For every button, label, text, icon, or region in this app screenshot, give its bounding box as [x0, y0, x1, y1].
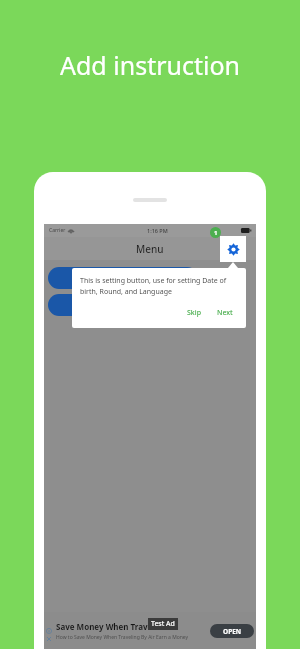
staticText: Test Ad	[151, 619, 175, 629]
staticText: How to Save Money When Traveling By Air …	[56, 634, 189, 641]
staticText: 1:16 PM	[147, 227, 168, 234]
staticText: Save Money When Travel	[56, 621, 155, 632]
staticText: This is setting button, use for setting …	[80, 276, 238, 296]
staticText: Skip	[187, 308, 201, 318]
button[interactable]: Settings	[220, 236, 246, 262]
staticText: Carrier	[49, 227, 66, 234]
button[interactable]: Skip	[182, 306, 206, 320]
button[interactable]	[48, 294, 198, 316]
staticText: Next	[217, 308, 233, 318]
staticText: Add instruction	[0, 48, 300, 82]
button[interactable]: OPEN	[210, 624, 254, 638]
button[interactable]: Next	[212, 306, 238, 320]
staticText: OPEN	[223, 627, 242, 636]
button[interactable]	[48, 267, 198, 289]
staticText: Menu	[136, 242, 164, 256]
staticText: 1	[214, 229, 218, 237]
